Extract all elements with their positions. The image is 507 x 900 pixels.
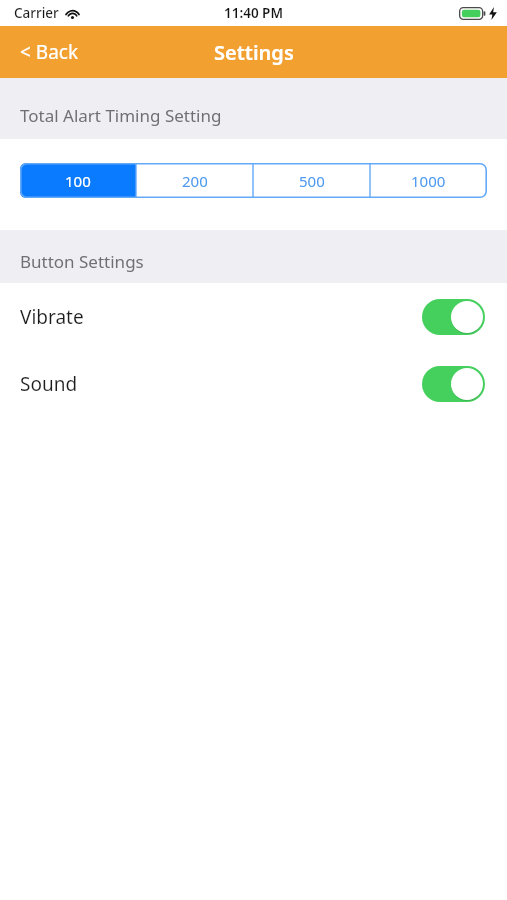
staticText: Settings (214, 39, 294, 66)
button[interactable]: < Back (0, 29, 99, 75)
staticText: Button Settings (20, 250, 144, 273)
staticText: Sound (20, 371, 78, 397)
staticText: 500 (299, 171, 325, 191)
button[interactable]: 200 (136, 163, 253, 198)
staticText: 1000 (411, 171, 446, 191)
button[interactable]: Toggle on (422, 299, 485, 335)
button[interactable]: Sound (0, 350, 507, 417)
button[interactable]: 500 (253, 163, 370, 198)
button[interactable]: 1000 (370, 163, 487, 198)
staticText: 200 (182, 171, 208, 191)
button[interactable]: Toggle on (422, 366, 485, 402)
button[interactable]: 100 (20, 163, 136, 198)
button[interactable]: Vibrate (0, 283, 507, 350)
staticText: 100 (65, 171, 91, 191)
staticText: < Back (20, 39, 79, 65)
staticText: 11:40 PM (224, 4, 283, 22)
staticText: Carrier (14, 4, 59, 22)
staticText: Vibrate (20, 304, 84, 330)
staticText: Total Alart Timing Setting (20, 104, 222, 127)
